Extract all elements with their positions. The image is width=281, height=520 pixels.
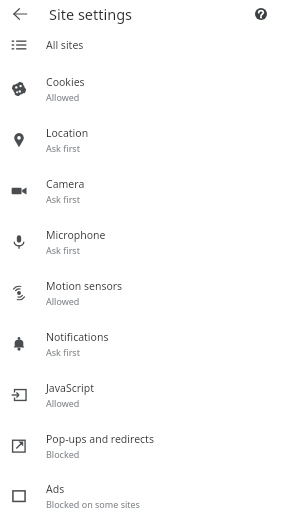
staticText: Pop-ups and redirects <box>46 432 154 446</box>
button[interactable]: JavaScript <box>0 369 281 420</box>
staticText: Ads <box>46 482 65 496</box>
staticText: Ask first <box>46 142 80 154</box>
staticText: Ask first <box>46 244 80 256</box>
staticText: Ask first <box>46 346 80 358</box>
button[interactable]: Camera <box>0 165 281 216</box>
button[interactable]: Location <box>0 114 281 165</box>
staticText: Allowed <box>46 91 80 103</box>
staticText: Microphone <box>46 228 106 242</box>
staticText: Ask first <box>46 193 80 205</box>
button[interactable]: Help <box>249 2 273 26</box>
button[interactable]: Pop-ups <box>0 420 281 471</box>
button[interactable]: All sites <box>0 27 281 63</box>
staticText: Blocked on some sites <box>46 498 140 510</box>
staticText: Camera <box>46 177 85 191</box>
button[interactable]: Ads <box>0 471 281 520</box>
staticText: Location <box>46 126 89 140</box>
button[interactable]: Notifications <box>0 318 281 369</box>
button[interactable]: Back <box>8 2 32 26</box>
staticText: Allowed <box>46 397 80 409</box>
staticText: All sites <box>46 38 84 52</box>
staticText: Allowed <box>46 295 80 307</box>
staticText: Blocked <box>46 448 80 460</box>
button[interactable]: Microphone <box>0 216 281 267</box>
staticText: Notifications <box>46 330 109 344</box>
button[interactable]: Cookies <box>0 63 281 114</box>
staticText: Motion sensors <box>46 279 123 293</box>
staticText: Site settings <box>49 4 133 24</box>
staticText: JavaScript <box>46 381 95 395</box>
button[interactable]: Motion sensors <box>0 267 281 318</box>
staticText: Cookies <box>46 75 85 89</box>
